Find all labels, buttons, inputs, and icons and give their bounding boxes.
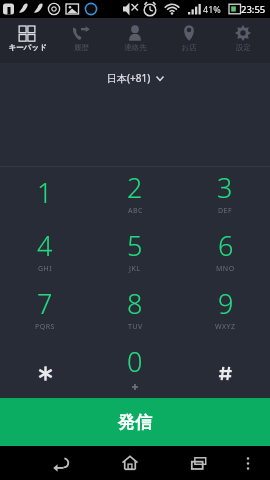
staticText: 5 bbox=[127, 227, 143, 264]
button[interactable]: お店 bbox=[162, 18, 216, 63]
staticText: 0 bbox=[127, 343, 143, 380]
staticText: キーパッド bbox=[8, 43, 47, 52]
button[interactable]: 3 bbox=[180, 167, 270, 224]
staticText: 9 bbox=[218, 285, 234, 322]
staticText: GHI bbox=[38, 264, 53, 274]
button[interactable] bbox=[0, 340, 90, 398]
staticText: DEF bbox=[218, 206, 233, 216]
button[interactable]: More options bbox=[235, 446, 260, 480]
staticText: 設定 bbox=[236, 43, 251, 52]
button[interactable]: Recent apps bbox=[176, 446, 222, 480]
staticText: 23:55 bbox=[241, 3, 266, 16]
button[interactable]: 履歴 bbox=[54, 18, 108, 63]
staticText: PQRS bbox=[35, 322, 55, 332]
staticText: 6 bbox=[218, 227, 234, 264]
staticText: 1 bbox=[37, 174, 53, 211]
button[interactable] bbox=[180, 340, 270, 398]
staticText: 41% bbox=[203, 3, 221, 15]
button[interactable]: 5 bbox=[90, 224, 180, 282]
staticText: 発信 bbox=[118, 412, 152, 433]
staticText: WXYZ bbox=[215, 322, 236, 332]
staticText: JKL bbox=[129, 264, 141, 274]
staticText: 2 bbox=[127, 169, 143, 206]
staticText: 履歴 bbox=[74, 43, 89, 52]
button[interactable]: 1 bbox=[0, 167, 90, 224]
staticText: お店 bbox=[181, 43, 197, 52]
staticText: ABC bbox=[128, 206, 143, 216]
button[interactable]: 発信 bbox=[0, 398, 270, 446]
button[interactable]: 0 bbox=[90, 340, 180, 398]
staticText: TUV bbox=[128, 322, 143, 332]
button[interactable]: 2 bbox=[90, 167, 180, 224]
button[interactable]: 8 bbox=[90, 282, 180, 340]
staticText: MNO bbox=[216, 264, 235, 274]
button[interactable]: 4 bbox=[0, 224, 90, 282]
button[interactable]: Home bbox=[107, 446, 153, 480]
staticText: 7 bbox=[37, 285, 53, 322]
button[interactable]: 9 bbox=[180, 282, 270, 340]
button[interactable]: 連絡先 bbox=[108, 18, 162, 63]
staticText: 日本(+81) bbox=[107, 71, 151, 85]
button[interactable]: 設定 bbox=[216, 18, 270, 63]
staticText: 4 bbox=[37, 227, 53, 264]
button[interactable]: キーパッド bbox=[0, 18, 54, 63]
button[interactable]: Back bbox=[38, 446, 84, 480]
staticText: 3 bbox=[217, 169, 233, 206]
staticText: 8 bbox=[127, 285, 143, 322]
button[interactable]: 7 bbox=[0, 282, 90, 340]
button[interactable]: 日本(+81) bbox=[95, 66, 176, 90]
button[interactable]: 6 bbox=[180, 224, 270, 282]
staticText: 連絡先 bbox=[124, 43, 147, 52]
